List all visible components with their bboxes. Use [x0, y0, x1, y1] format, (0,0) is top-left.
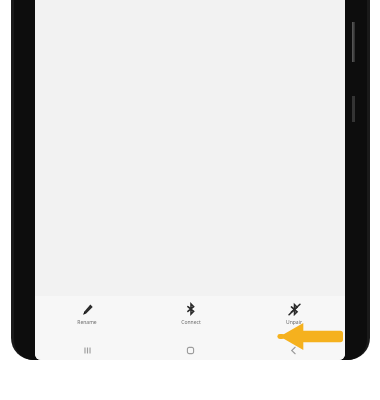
button[interactable]: Back	[242, 340, 345, 360]
staticText: Unpair	[286, 319, 302, 326]
button[interactable]: Unpair	[242, 296, 345, 340]
button[interactable]: Rename	[35, 296, 139, 340]
other: Annotation arrow pointing at Unpair	[279, 323, 343, 350]
staticText: Rename	[77, 319, 97, 326]
staticText: Connect	[181, 319, 201, 326]
button[interactable]: Connect	[139, 296, 242, 340]
button[interactable]: Recent apps	[35, 340, 139, 360]
button[interactable]: Home	[139, 340, 242, 360]
